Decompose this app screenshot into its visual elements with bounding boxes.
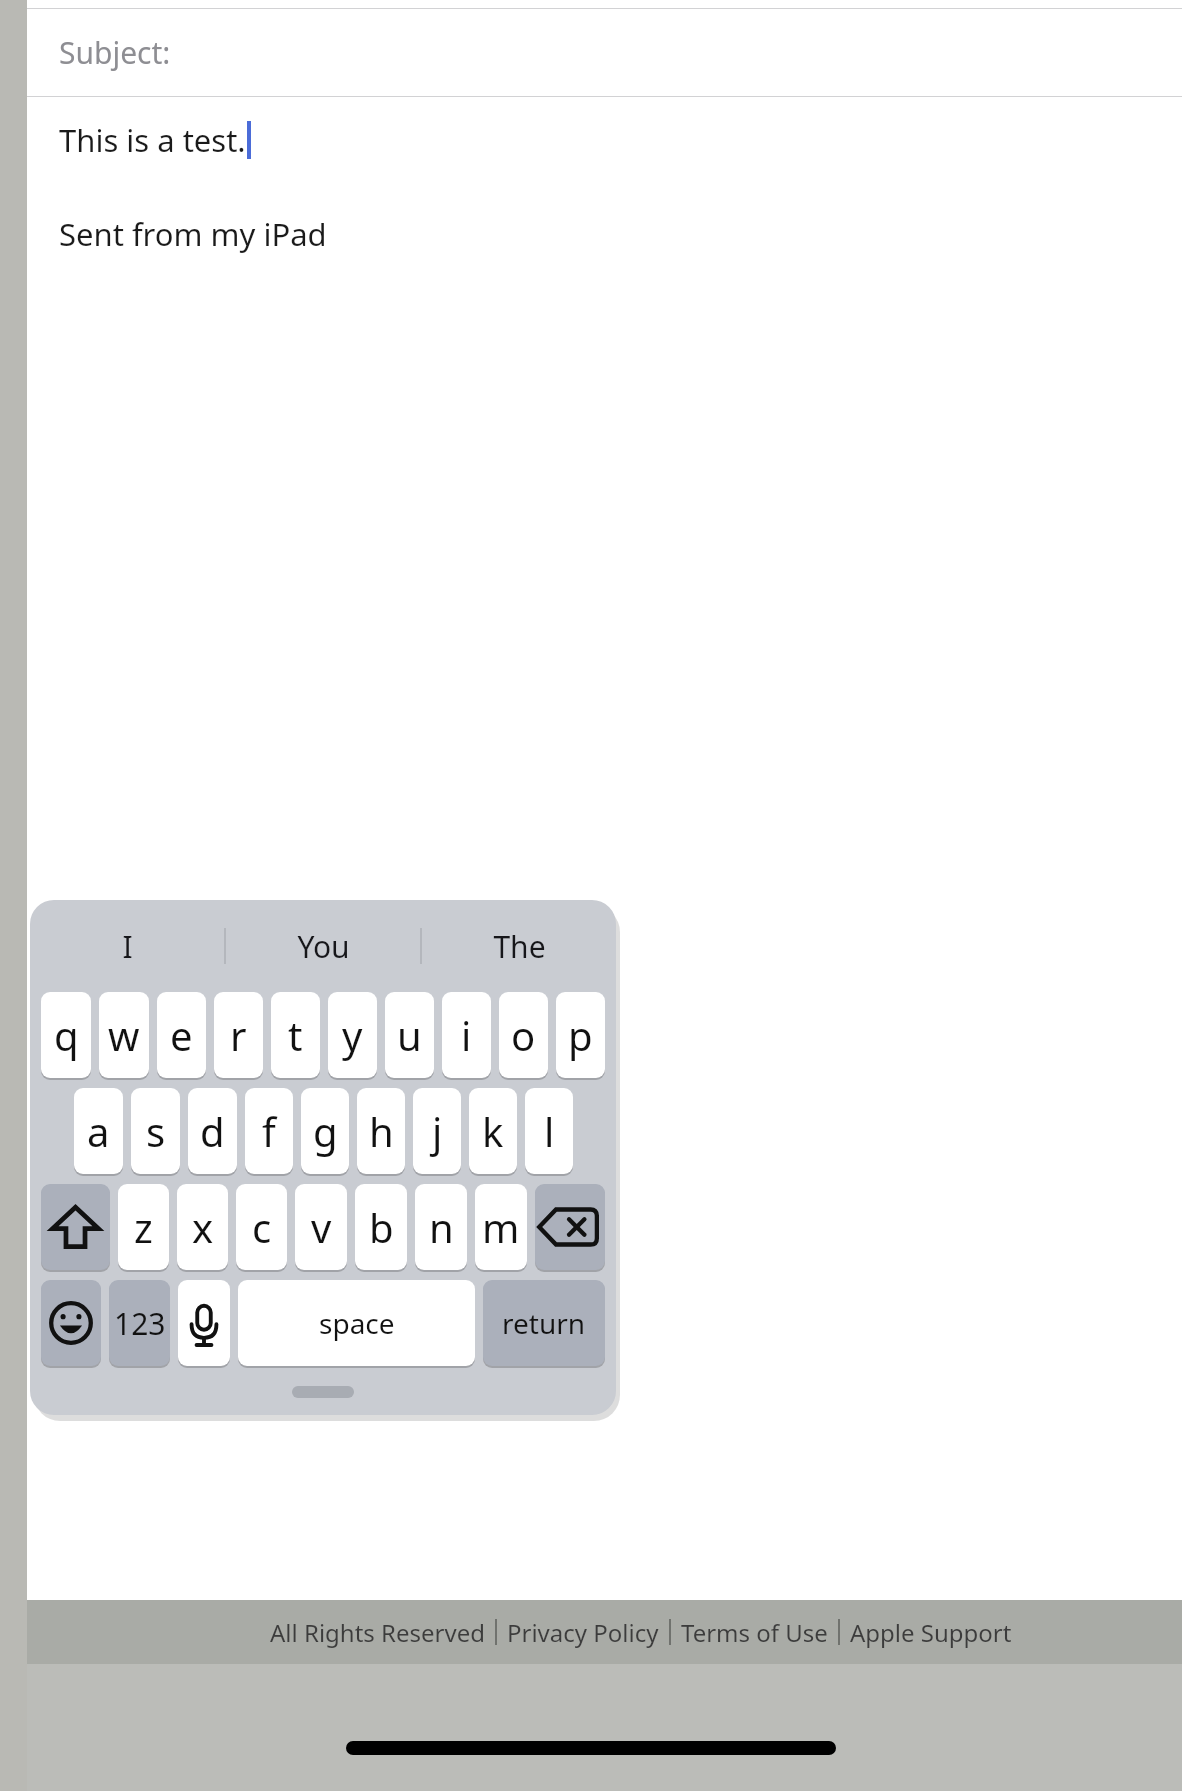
staticText: 123 xyxy=(114,1303,166,1344)
staticText: p xyxy=(568,1008,593,1062)
button[interactable]: All Rights Reserved xyxy=(260,1616,495,1649)
button[interactable]: Dictation xyxy=(178,1280,230,1366)
staticText: f xyxy=(262,1104,276,1158)
button[interactable]: You xyxy=(226,900,420,992)
staticText: w xyxy=(108,1008,140,1062)
button[interactable]: Move keyboard xyxy=(292,1386,354,1398)
staticText: d xyxy=(200,1104,225,1158)
staticText: The xyxy=(493,926,546,967)
button[interactable]: u xyxy=(385,992,434,1078)
button[interactable]: t xyxy=(271,992,320,1078)
button[interactable]: x xyxy=(177,1184,228,1270)
button[interactable]: s xyxy=(131,1088,180,1174)
staticText: n xyxy=(429,1200,454,1254)
staticText: i xyxy=(461,1008,472,1062)
button[interactable]: 123 xyxy=(109,1280,170,1366)
staticText: o xyxy=(511,1008,536,1062)
button[interactable]: Backspace xyxy=(535,1184,605,1270)
button[interactable]: j xyxy=(413,1088,461,1174)
button[interactable]: Apple Support xyxy=(840,1616,1022,1649)
staticText: q xyxy=(54,1008,79,1062)
staticText: s xyxy=(146,1104,166,1158)
button[interactable]: z xyxy=(118,1184,169,1270)
staticText: Privacy Policy xyxy=(507,1616,659,1649)
button[interactable]: r xyxy=(214,992,263,1078)
button[interactable]: o xyxy=(499,992,548,1078)
staticText: This is a test. xyxy=(59,119,246,161)
button[interactable]: h xyxy=(357,1088,405,1174)
button[interactable]: w xyxy=(99,992,149,1078)
button[interactable]: I xyxy=(30,900,224,992)
button[interactable]: e xyxy=(157,992,206,1078)
button[interactable]: Privacy Policy xyxy=(497,1616,669,1649)
staticText: You xyxy=(297,926,350,967)
staticText: x xyxy=(192,1200,214,1254)
button[interactable]: g xyxy=(301,1088,349,1174)
button[interactable]: y xyxy=(328,992,377,1078)
staticText: m xyxy=(482,1200,520,1254)
button[interactable]: i xyxy=(442,992,491,1078)
staticText: c xyxy=(252,1200,272,1254)
staticText: Apple Support xyxy=(850,1616,1012,1649)
button[interactable]: d xyxy=(188,1088,237,1174)
button[interactable]: v xyxy=(295,1184,347,1270)
staticText: u xyxy=(397,1008,422,1062)
button[interactable]: m xyxy=(475,1184,527,1270)
button[interactable]: f xyxy=(245,1088,293,1174)
button[interactable]: a xyxy=(74,1088,123,1174)
staticText: r xyxy=(230,1008,247,1062)
button[interactable]: Subject: xyxy=(27,9,1182,96)
staticText: Terms of Use xyxy=(681,1616,828,1649)
staticText: a xyxy=(87,1104,110,1158)
staticText: b xyxy=(369,1200,394,1254)
staticText: I xyxy=(122,926,133,967)
staticText: space xyxy=(319,1304,395,1342)
staticText: Sent from my iPad xyxy=(59,213,327,255)
staticText: v xyxy=(311,1200,332,1254)
button[interactable]: space xyxy=(238,1280,475,1366)
button[interactable]: n xyxy=(415,1184,467,1270)
staticText: j xyxy=(432,1104,443,1158)
button[interactable]: Shift xyxy=(41,1184,110,1270)
button[interactable]: k xyxy=(469,1088,517,1174)
button[interactable]: p xyxy=(556,992,605,1078)
staticText: t xyxy=(288,1008,303,1062)
staticText: g xyxy=(313,1104,338,1158)
button[interactable]: Emoji xyxy=(41,1280,101,1366)
staticText: z xyxy=(134,1200,153,1254)
button[interactable]: b xyxy=(355,1184,407,1270)
staticText: Subject: xyxy=(59,32,171,73)
staticText: k xyxy=(482,1104,504,1158)
staticText: e xyxy=(170,1008,193,1062)
staticText: h xyxy=(369,1104,394,1158)
staticText: l xyxy=(544,1104,555,1158)
button[interactable]: q xyxy=(41,992,91,1078)
button[interactable]: c xyxy=(236,1184,287,1270)
button[interactable]: return xyxy=(483,1280,605,1366)
button[interactable]: l xyxy=(525,1088,573,1174)
button[interactable]: The xyxy=(422,900,616,992)
button[interactable]: Terms of Use xyxy=(671,1616,838,1649)
staticText: return xyxy=(502,1304,586,1342)
staticText: y xyxy=(342,1008,363,1062)
staticText: All Rights Reserved xyxy=(270,1616,485,1649)
